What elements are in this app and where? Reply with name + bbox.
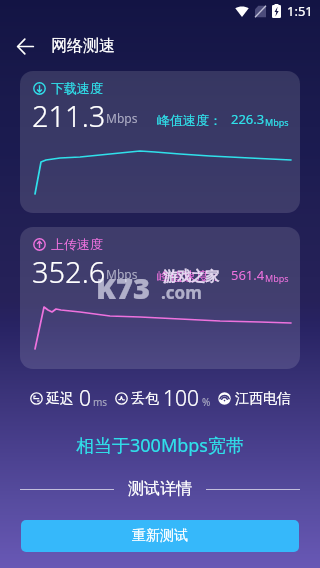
staticText: K73 [96, 268, 150, 307]
staticText: 峰值速度： [157, 112, 222, 128]
staticText: 1:51 [287, 2, 313, 20]
staticText: 226.3 [231, 110, 265, 128]
staticText: 100 [163, 384, 199, 413]
staticText: 211.3 [32, 96, 106, 130]
staticText: 上传速度 [51, 236, 103, 252]
staticText: % [202, 395, 211, 409]
button[interactable]: Back [6, 27, 44, 65]
staticText: 0 [79, 384, 91, 413]
staticText: Mbps [106, 266, 138, 282]
staticText: 网络测速 [51, 36, 115, 56]
staticText: 峰值速度： [157, 268, 222, 284]
staticText: 延迟 [46, 390, 74, 408]
staticText: Mbps [265, 116, 289, 128]
staticText: 561.4 [231, 266, 265, 284]
staticText: 测试详情 [128, 479, 192, 499]
staticText: 江西电信 [235, 390, 291, 408]
staticText: 丢包 [131, 390, 159, 408]
staticText: 游戏之家 [163, 268, 219, 286]
button[interactable]: 重新测试 [21, 520, 299, 552]
staticText: 352.6 [32, 252, 106, 286]
staticText: 相当于300Mbps宽带 [0, 433, 320, 458]
staticText: 下载速度 [51, 80, 103, 96]
staticText: Mbps [265, 272, 289, 284]
staticText: .com [161, 281, 202, 304]
staticText: Mbps [106, 110, 138, 126]
staticText: ms [93, 395, 108, 409]
staticText: 重新测试 [132, 527, 188, 545]
